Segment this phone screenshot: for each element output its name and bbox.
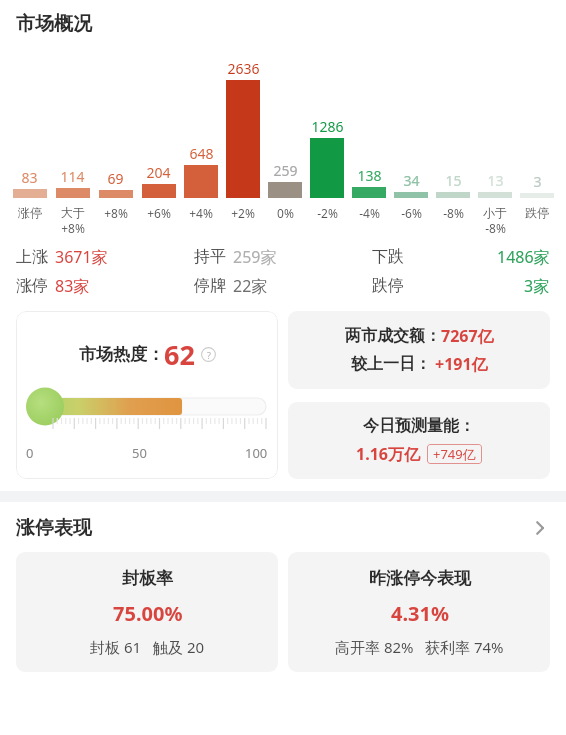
staticText: 大于: [61, 205, 85, 220]
staticText: 涨停: [18, 205, 42, 220]
staticText: 100: [245, 444, 268, 462]
staticText: 648: [189, 144, 214, 163]
staticText: 34: [403, 171, 420, 190]
staticText: 204: [146, 163, 171, 182]
button[interactable]: 封板率: [16, 552, 278, 672]
staticText: 较上一日：: [351, 354, 431, 374]
staticText: +749亿: [433, 445, 476, 463]
staticText: 13: [487, 171, 504, 190]
staticText: 两市成交额：: [345, 326, 441, 346]
staticText: -4%: [359, 205, 380, 221]
staticText: 昨涨停今表现: [369, 568, 471, 589]
staticText: 259: [273, 161, 298, 180]
other: 查看更多: [528, 517, 550, 539]
staticText: -8%: [485, 220, 506, 236]
staticText: 83: [21, 168, 38, 187]
staticText: 1486家: [497, 246, 550, 268]
button[interactable]: 两市成交额：: [288, 311, 550, 389]
staticText: 75.00%: [113, 600, 183, 627]
staticText: 7267亿: [441, 325, 494, 347]
staticText: 封板率: [122, 568, 173, 589]
staticText: 259家: [233, 246, 277, 268]
staticText: 跌停: [372, 276, 404, 296]
staticText: 获利率 74%: [425, 637, 504, 657]
staticText: 138: [357, 166, 382, 185]
button[interactable]: 今日预测量能：: [288, 402, 550, 479]
staticText: 停牌: [194, 276, 226, 296]
staticText: +8%: [61, 220, 85, 236]
staticText: 市场热度：: [79, 344, 164, 365]
staticText: 0%: [277, 205, 294, 221]
staticText: ?: [207, 349, 211, 361]
staticText: 持平: [194, 247, 226, 267]
staticText: +191亿: [435, 353, 488, 375]
staticText: +2%: [231, 205, 255, 221]
button[interactable]: 昨涨停今表现: [288, 552, 550, 672]
staticText: 3家: [524, 275, 550, 297]
button[interactable]: 涨停表现: [0, 502, 566, 552]
staticText: 触及 20: [153, 637, 205, 657]
staticText: 涨停表现: [16, 516, 92, 540]
staticText: 15: [445, 171, 462, 190]
staticText: -6%: [401, 205, 422, 221]
staticText: -8%: [443, 205, 464, 221]
staticText: 62: [164, 336, 195, 373]
staticText: 2636: [227, 59, 260, 78]
staticText: 0: [26, 444, 34, 462]
staticText: 50: [132, 444, 147, 462]
staticText: 4.31%: [391, 600, 449, 627]
staticText: 3: [533, 172, 542, 191]
staticText: 114: [60, 167, 85, 186]
staticText: +8%: [104, 205, 128, 221]
staticText: 下跌: [372, 247, 404, 267]
staticText: 1.16万亿: [356, 443, 420, 465]
staticText: +6%: [147, 205, 171, 221]
staticText: 3671家: [55, 246, 108, 268]
button[interactable]: 帮助: [201, 347, 216, 362]
staticText: 上涨: [16, 247, 48, 267]
staticText: 83家: [55, 275, 90, 297]
staticText: +4%: [189, 205, 213, 221]
staticText: 小于: [483, 205, 507, 220]
staticText: 涨停: [16, 276, 48, 296]
staticText: 1286: [311, 117, 344, 136]
staticText: 跌停: [525, 205, 549, 220]
staticText: 封板 61: [90, 637, 142, 657]
staticText: 高开率 82%: [335, 637, 414, 657]
staticText: 22家: [233, 275, 268, 297]
button[interactable]: 市场热度：: [16, 311, 278, 479]
staticText: -2%: [317, 205, 338, 221]
staticText: 69: [107, 169, 124, 188]
staticText: 市场概况: [16, 12, 92, 36]
staticText: 今日预测量能：: [363, 416, 475, 436]
